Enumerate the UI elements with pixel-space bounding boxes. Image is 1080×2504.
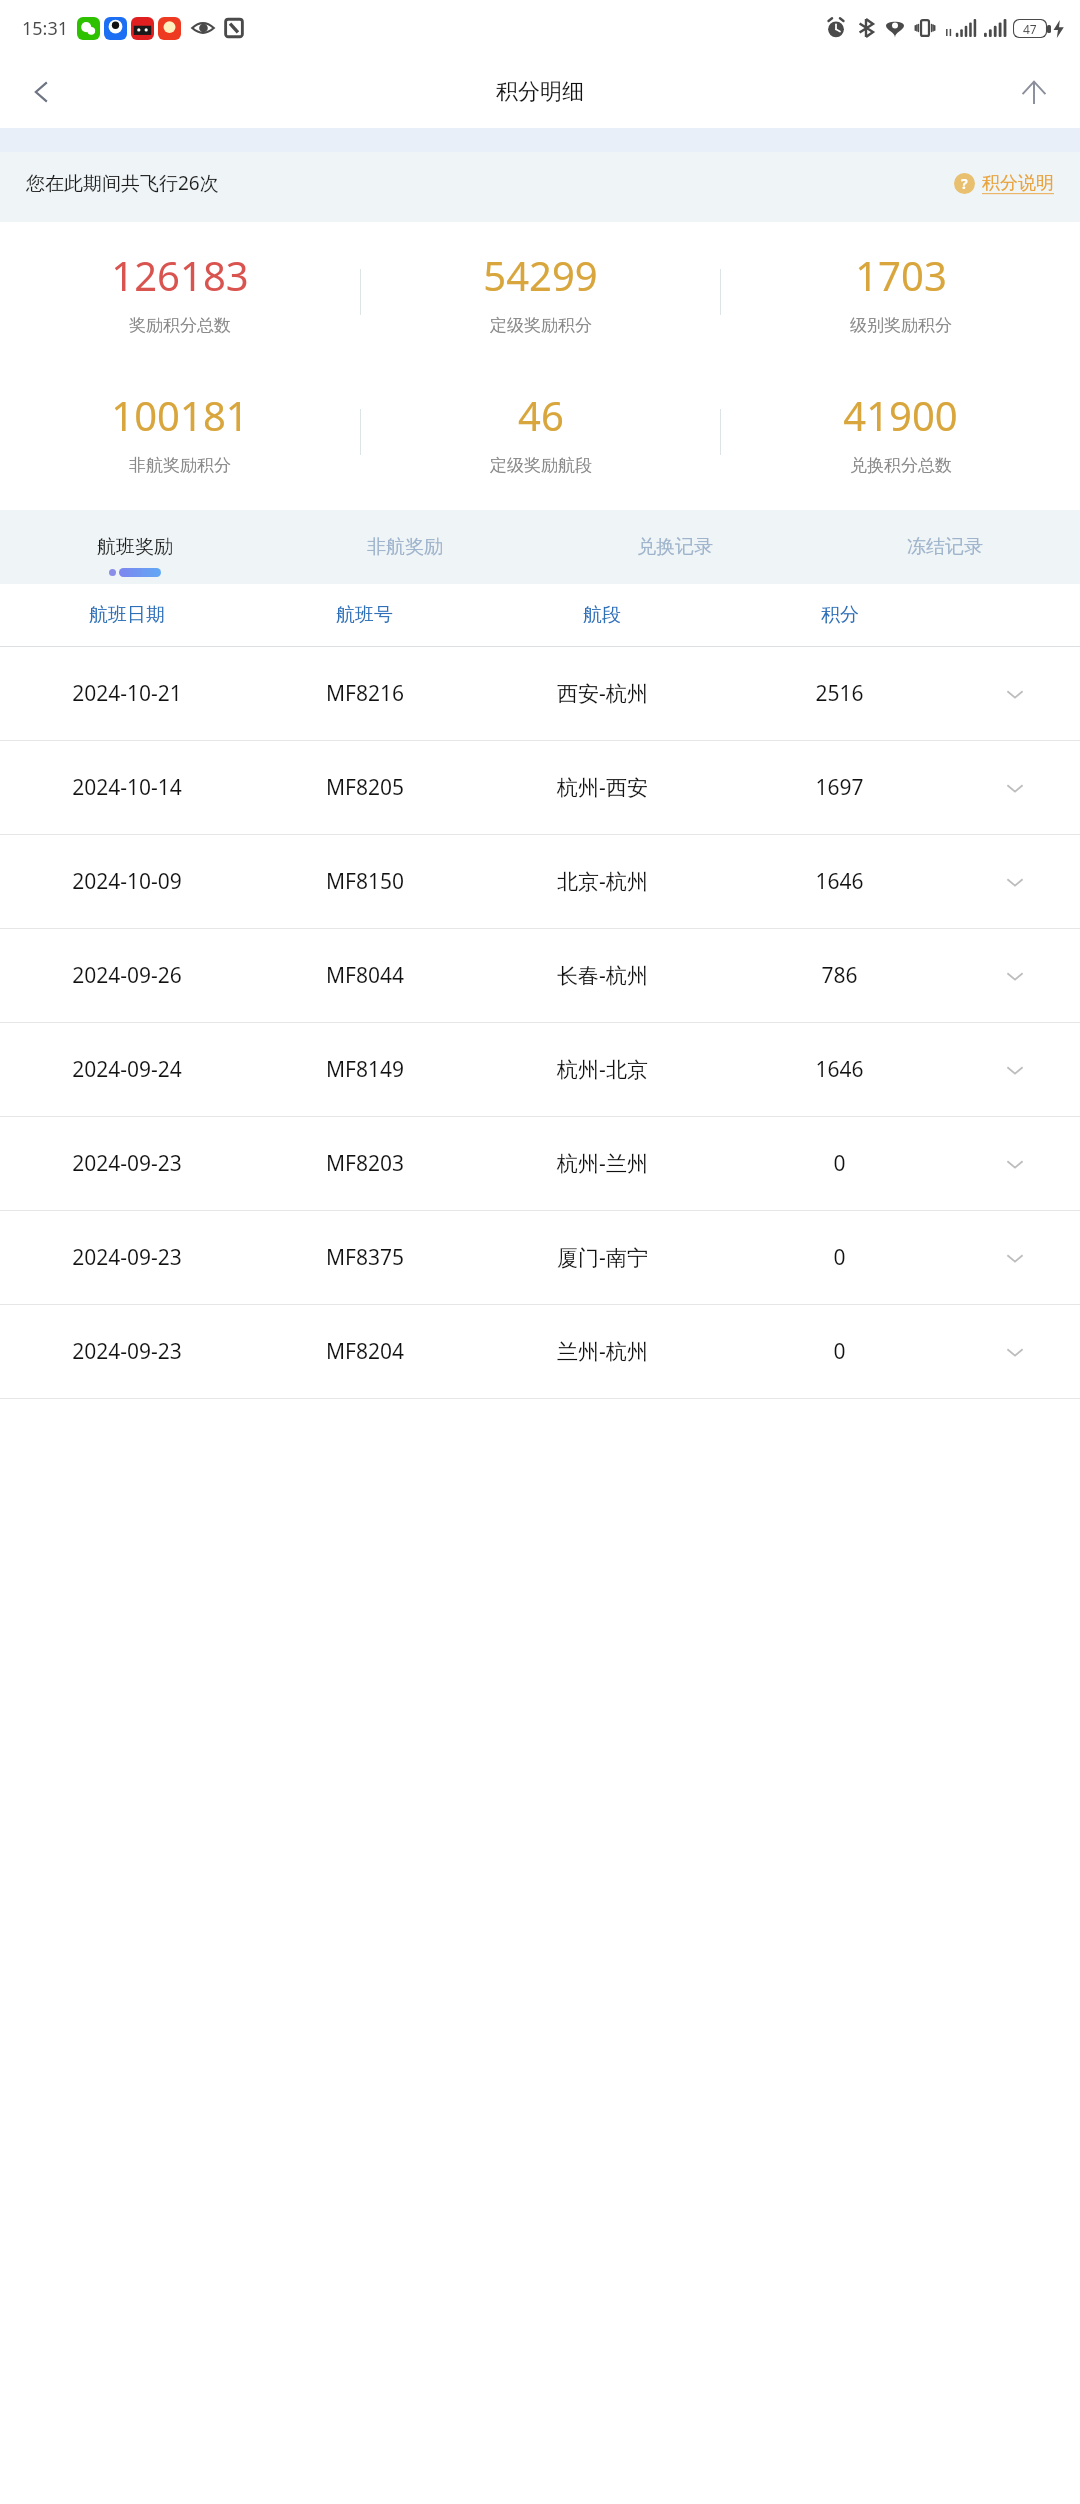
staticText: MF8149 bbox=[326, 1055, 404, 1084]
button[interactable]: 2024-09-23 bbox=[0, 1305, 1080, 1398]
staticText: 2024-09-23 bbox=[72, 1337, 182, 1366]
staticText: 786 bbox=[821, 961, 858, 990]
staticText: 1703 bbox=[855, 248, 947, 302]
button[interactable]: 非航奖励 bbox=[270, 510, 540, 584]
staticText: 54299 bbox=[483, 248, 598, 302]
staticText: 奖励积分总数 bbox=[129, 315, 231, 336]
button[interactable]: 46 bbox=[361, 376, 720, 488]
staticText: 126183 bbox=[111, 248, 249, 302]
staticText: 1646 bbox=[815, 1055, 864, 1084]
button[interactable]: 2024-09-23 bbox=[0, 1117, 1080, 1210]
button[interactable]: 2024-09-23 bbox=[0, 1211, 1080, 1304]
button[interactable]: 冻结记录 bbox=[810, 510, 1080, 584]
staticText: 航班日期 bbox=[89, 603, 165, 627]
staticText: 非航奖励 bbox=[367, 535, 443, 559]
staticText: 冻结记录 bbox=[907, 535, 983, 559]
staticText: 2024-09-23 bbox=[72, 1243, 182, 1272]
staticText: 级别奖励积分 bbox=[850, 315, 952, 336]
staticText: MF8204 bbox=[326, 1337, 404, 1366]
button[interactable]: 2024-10-21 bbox=[0, 647, 1080, 740]
staticText: 厦门-南宁 bbox=[557, 1243, 648, 1272]
staticText: 积分 bbox=[821, 603, 859, 627]
staticText: MF8044 bbox=[326, 961, 404, 990]
button[interactable]: 兑换记录 bbox=[540, 510, 810, 584]
staticText: 100181 bbox=[111, 388, 249, 442]
staticText: 0 bbox=[833, 1149, 846, 1178]
staticText: 41900 bbox=[843, 388, 958, 442]
staticText: 航班号 bbox=[336, 603, 393, 627]
button[interactable]: 54299 bbox=[361, 236, 720, 348]
staticText: 航班奖励 bbox=[97, 535, 173, 559]
staticText: 您在此期间共飞行26次 bbox=[26, 170, 219, 196]
button[interactable]: Home bbox=[1006, 64, 1062, 120]
button[interactable]: 积分说明 bbox=[954, 172, 1054, 195]
button[interactable]: 2024-10-09 bbox=[0, 835, 1080, 928]
staticText: 2024-10-09 bbox=[72, 867, 182, 896]
staticText: 兑换记录 bbox=[637, 535, 713, 559]
staticText: 航段 bbox=[583, 603, 621, 627]
button[interactable]: Back bbox=[14, 64, 70, 120]
staticText: 2024-10-14 bbox=[72, 773, 182, 802]
staticText: 非航奖励积分 bbox=[129, 455, 231, 476]
staticText: 46 bbox=[518, 388, 564, 442]
staticText: MF8375 bbox=[326, 1243, 404, 1272]
staticText: 0 bbox=[833, 1243, 846, 1272]
staticText: 兰州-杭州 bbox=[557, 1337, 648, 1366]
staticText: 杭州-西安 bbox=[557, 773, 648, 802]
staticText: 1697 bbox=[815, 773, 864, 802]
staticText: 2024-09-24 bbox=[72, 1055, 182, 1084]
button[interactable]: 2024-10-14 bbox=[0, 741, 1080, 834]
staticText: MF8150 bbox=[326, 867, 404, 896]
button[interactable]: 2024-09-24 bbox=[0, 1023, 1080, 1116]
button[interactable]: 100181 bbox=[0, 376, 360, 488]
staticText: 2516 bbox=[815, 679, 864, 708]
staticText: MF8203 bbox=[326, 1149, 404, 1178]
staticText: 2024-09-26 bbox=[72, 961, 182, 990]
staticText: 定级奖励航段 bbox=[490, 455, 592, 476]
button[interactable]: 126183 bbox=[0, 236, 360, 348]
staticText: 长春-杭州 bbox=[557, 961, 648, 990]
staticText: 杭州-兰州 bbox=[557, 1149, 648, 1178]
staticText: 杭州-北京 bbox=[557, 1055, 648, 1084]
staticText: ? bbox=[961, 174, 968, 193]
staticText: 积分明细 bbox=[496, 78, 584, 106]
staticText: 兑换积分总数 bbox=[850, 455, 952, 476]
button[interactable]: 1703 bbox=[721, 236, 1080, 348]
button[interactable]: 航班奖励 bbox=[0, 510, 270, 584]
button[interactable]: 41900 bbox=[721, 376, 1080, 488]
staticText: 定级奖励积分 bbox=[490, 315, 592, 336]
staticText: 2024-10-21 bbox=[72, 679, 182, 708]
staticText: 西安-杭州 bbox=[557, 679, 648, 708]
staticText: 北京-杭州 bbox=[557, 867, 648, 896]
staticText: 积分说明 bbox=[982, 172, 1054, 195]
staticText: 15:31 bbox=[22, 16, 69, 41]
staticText: 2024-09-23 bbox=[72, 1149, 182, 1178]
staticText: MF8216 bbox=[326, 679, 404, 708]
staticText: 1646 bbox=[815, 867, 864, 896]
staticText: 0 bbox=[833, 1337, 846, 1366]
button[interactable]: 2024-09-26 bbox=[0, 929, 1080, 1022]
staticText: MF8205 bbox=[326, 773, 404, 802]
staticText: 47 bbox=[1023, 21, 1037, 37]
